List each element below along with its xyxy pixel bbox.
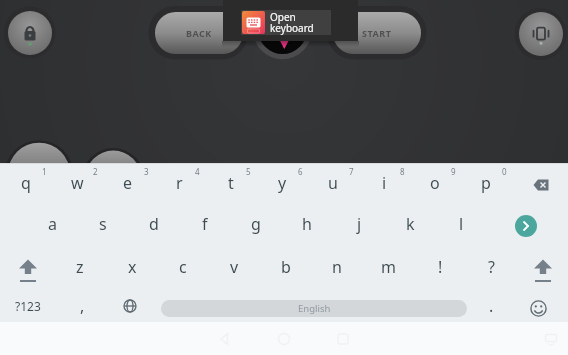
staticText: ?123 <box>15 298 41 314</box>
button[interactable]: d <box>128 204 180 244</box>
staticText: 8 <box>400 166 405 176</box>
staticText: z <box>76 256 84 278</box>
staticText: y <box>278 172 287 194</box>
button[interactable] <box>504 206 547 246</box>
staticText: 0 <box>502 166 507 176</box>
staticText: j <box>357 213 362 235</box>
staticText: 3 <box>144 166 149 176</box>
button[interactable]: ?123 <box>2 289 54 323</box>
staticText: m <box>381 256 396 278</box>
button[interactable] <box>8 11 52 55</box>
staticText: g <box>251 213 261 235</box>
button[interactable]: x <box>106 247 158 287</box>
button[interactable]: e <box>102 163 154 203</box>
staticText: BACK <box>186 27 212 39</box>
staticText: f <box>202 213 208 235</box>
button[interactable]: t <box>205 163 257 203</box>
staticText: Open keyboard <box>270 10 314 35</box>
staticText: v <box>230 256 239 278</box>
staticText: n <box>332 256 342 278</box>
staticText: x <box>128 256 137 278</box>
button[interactable] <box>519 12 563 56</box>
staticText: o <box>430 172 440 194</box>
button[interactable]: n <box>311 247 363 287</box>
button[interactable]: a <box>26 204 78 244</box>
button[interactable]: q <box>0 163 52 203</box>
button[interactable]: v <box>208 247 260 287</box>
staticText: t <box>228 172 234 194</box>
button[interactable]: l <box>435 204 487 244</box>
staticText: d <box>149 213 159 235</box>
staticText: w <box>71 172 84 194</box>
button[interactable]: . <box>465 289 517 323</box>
button[interactable]: u <box>307 163 359 203</box>
staticText: , <box>80 295 85 317</box>
button[interactable]: ? <box>465 247 517 287</box>
staticText: 5 <box>246 166 251 176</box>
staticText: q <box>21 172 31 194</box>
button[interactable] <box>104 289 156 323</box>
button[interactable]: c <box>157 247 209 287</box>
staticText: 4 <box>195 166 200 176</box>
button[interactable] <box>517 252 568 292</box>
button[interactable]: p <box>460 163 512 203</box>
button[interactable] <box>258 5 307 54</box>
button[interactable]: , <box>56 289 108 323</box>
staticText: p <box>481 172 491 194</box>
staticText: b <box>281 256 291 278</box>
staticText: 9 <box>451 166 456 176</box>
button[interactable]: m <box>362 247 414 287</box>
staticText: ! <box>438 256 443 278</box>
button[interactable]: f <box>179 204 231 244</box>
button[interactable]: g <box>230 204 282 244</box>
staticText: e <box>123 172 133 194</box>
button[interactable] <box>512 291 565 325</box>
staticText: h <box>302 213 312 235</box>
staticText: . <box>489 295 494 317</box>
button[interactable] <box>241 10 331 35</box>
staticText: 2 <box>93 166 98 176</box>
staticText: START <box>362 27 392 39</box>
button[interactable]: r <box>153 163 205 203</box>
button[interactable]: ! <box>414 247 466 287</box>
button[interactable]: k <box>384 204 436 244</box>
button[interactable]: BACK <box>155 12 243 54</box>
button[interactable]: s <box>77 204 129 244</box>
staticText: a <box>48 213 57 235</box>
staticText: ? <box>488 256 495 278</box>
button[interactable]: y <box>256 163 308 203</box>
staticText: u <box>328 172 338 194</box>
button[interactable]: i <box>358 163 410 203</box>
button[interactable]: z <box>54 247 106 287</box>
button[interactable]: English <box>161 300 467 317</box>
button[interactable]: j <box>333 204 385 244</box>
button[interactable]: START <box>333 12 421 54</box>
button[interactable]: b <box>260 247 312 287</box>
button[interactable]: o <box>409 163 461 203</box>
staticText: k <box>406 213 415 235</box>
staticText: s <box>99 213 107 235</box>
button[interactable]: h <box>281 204 333 244</box>
button[interactable] <box>514 165 568 205</box>
button[interactable]: w <box>51 163 103 203</box>
staticText: i <box>382 172 387 194</box>
staticText: 1 <box>42 166 47 176</box>
staticText: 6 <box>298 166 303 176</box>
staticText: 7 <box>349 166 354 176</box>
staticText: English <box>298 302 331 315</box>
button[interactable] <box>2 252 54 292</box>
staticText: l <box>459 213 464 235</box>
staticText: c <box>179 256 187 278</box>
staticText: r <box>176 172 183 194</box>
